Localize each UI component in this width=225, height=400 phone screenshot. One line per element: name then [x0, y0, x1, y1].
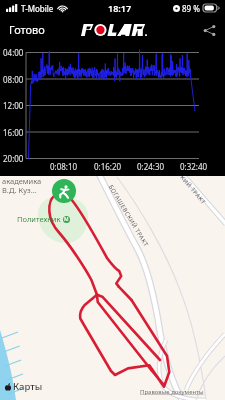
button[interactable]: Правовые документы — [140, 388, 204, 396]
staticText: академика В.Д. Куз… — [2, 176, 42, 195]
staticText: 18:17 — [108, 2, 132, 14]
staticText: Политехник — [17, 214, 61, 224]
staticText: T-Mobile — [21, 3, 54, 14]
staticText: 0:32:40 — [180, 161, 208, 172]
staticText: 08:00 — [3, 74, 24, 85]
button[interactable]: Готово — [7, 19, 47, 40]
staticText: 0:16:20 — [94, 161, 122, 172]
staticText: Карты — [13, 380, 43, 393]
staticText: 20:00 — [3, 153, 24, 164]
staticText: 12:00 — [3, 100, 24, 111]
staticText: БОГАШЕВСКИЙ ТРАКТ — [107, 183, 150, 248]
staticText: Готово — [9, 22, 45, 37]
staticText: 89 % — [182, 3, 200, 14]
staticText: 0:24:30 — [137, 161, 165, 172]
staticText: M — [64, 216, 69, 223]
staticText: Правовые документы — [140, 388, 204, 396]
staticText: 16:00 — [3, 127, 24, 138]
staticText: 04:00 — [3, 47, 24, 58]
staticText: 0:08:10 — [50, 161, 78, 172]
button[interactable]: Share — [199, 20, 219, 40]
staticText: КИЙ ТРАКТ — [178, 174, 208, 206]
